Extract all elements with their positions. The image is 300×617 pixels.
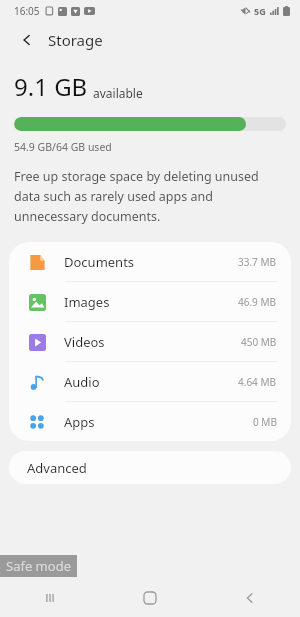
staticText: Free up storage space by deleting unused… [14,168,286,225]
button[interactable]: Images [9,282,291,321]
staticText: 9.1 GB [14,70,88,103]
staticText: available [93,85,143,101]
button[interactable]: Videos [9,322,291,361]
staticText: 16:05 [14,4,40,18]
button[interactable]: Home [100,579,200,617]
staticText: Apps [64,413,95,431]
staticText: Videos [64,333,105,351]
staticText: Images [64,293,110,311]
button[interactable]: Audio [9,362,291,401]
button[interactable]: Documents [9,242,291,281]
staticText: 450 MB [241,335,277,349]
staticText: 33.7 MB [238,255,277,269]
staticText: 4.64 MB [238,375,277,389]
staticText: Storage [48,30,103,50]
staticText: 0 MB [253,415,277,429]
button[interactable]: Advanced [9,451,291,484]
button[interactable]: Back [200,579,300,617]
staticText: Audio [64,373,100,391]
button[interactable]: Apps [9,402,291,441]
staticText: 5G [254,5,266,17]
button[interactable]: Recents [0,579,100,617]
button[interactable]: Back [14,27,40,53]
staticText: Documents [64,253,135,271]
staticText: Advanced [27,459,87,477]
staticText: Safe mode [6,557,71,575]
staticText: 54.9 GB/64 GB used [14,140,112,154]
staticText: 46.9 MB [238,295,277,309]
